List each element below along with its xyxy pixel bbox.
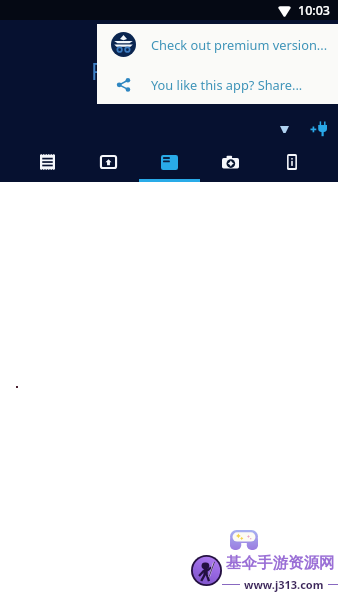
- button[interactable]: Device info: [261, 142, 322, 182]
- button[interactable]: Upload: [78, 142, 139, 182]
- button[interactable]: Logs: [16, 142, 78, 182]
- staticText: Check out premium version...: [151, 36, 328, 53]
- button[interactable]: Apps: [139, 142, 200, 182]
- button[interactable]: You like this app? Share...: [97, 64, 338, 104]
- button[interactable]: Expand: [272, 117, 296, 141]
- staticText: 基伞手游资源网: [226, 553, 335, 573]
- staticText: Pro: [91, 55, 128, 86]
- staticText: You like this app? Share...: [151, 76, 303, 93]
- button[interactable]: Camera: [200, 142, 261, 182]
- button[interactable]: Add connection: [307, 116, 333, 142]
- button[interactable]: Check out premium version...: [97, 24, 338, 64]
- staticText: 10:03: [298, 2, 331, 19]
- staticText: www.j313.com: [244, 577, 324, 592]
